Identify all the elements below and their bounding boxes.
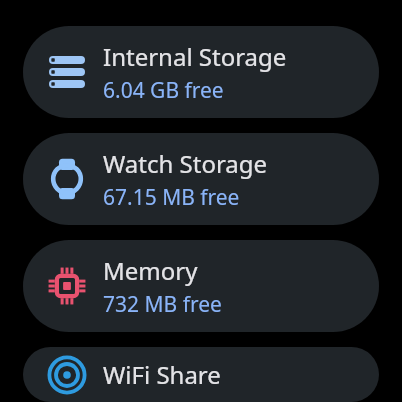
other: Watch storage	[47, 159, 87, 199]
staticText: Memory	[103, 254, 198, 287]
staticText: WiFi Share	[103, 358, 221, 391]
other: Memory	[47, 266, 87, 306]
staticText: 67.15 MB free	[103, 183, 240, 212]
button[interactable]: Internal storage	[23, 26, 379, 118]
button[interactable]: WiFi Share	[23, 347, 379, 402]
staticText: 732 MB free	[103, 290, 222, 319]
button[interactable]: Watch storage	[23, 133, 379, 225]
staticText: Watch Storage	[103, 147, 268, 180]
button[interactable]: Memory	[23, 240, 379, 332]
staticText: Internal Storage	[103, 40, 287, 73]
other: WiFi Share	[47, 355, 87, 395]
staticText: 6.04 GB free	[103, 76, 224, 105]
other: Internal storage	[47, 52, 87, 92]
